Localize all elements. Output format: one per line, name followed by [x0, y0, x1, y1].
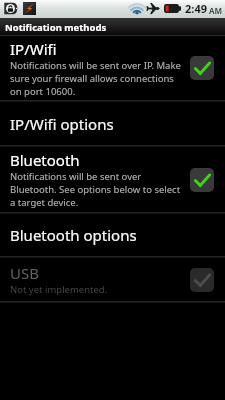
staticText: Not yet implemented. [10, 283, 108, 296]
staticText: USB [10, 263, 39, 283]
staticText: IP/Wifi [10, 39, 57, 59]
button[interactable]: IP/Wifi [0, 36, 225, 100]
button[interactable]: Toggle IP/Wifi [190, 56, 214, 80]
button[interactable]: Bluetooth options [0, 214, 225, 256]
staticText: Bluetooth [10, 150, 80, 170]
button[interactable]: IP/Wifi options [0, 102, 225, 145]
button[interactable]: USB [0, 258, 225, 301]
staticText: Notifications will be sent over IP. Make… [10, 59, 182, 98]
staticText: Notification methods [5, 21, 107, 34]
staticText: 2:49 [185, 1, 207, 16]
button[interactable]: Toggle Bluetooth [190, 168, 214, 192]
staticText: IP/Wifi options [10, 114, 114, 134]
button[interactable]: Toggle USB [190, 268, 214, 292]
staticText: Notifications will be sent over Bluetoot… [10, 170, 182, 209]
staticText: Bluetooth options [10, 225, 137, 245]
staticText: AM [209, 5, 223, 16]
button[interactable]: Bluetooth [0, 147, 225, 212]
